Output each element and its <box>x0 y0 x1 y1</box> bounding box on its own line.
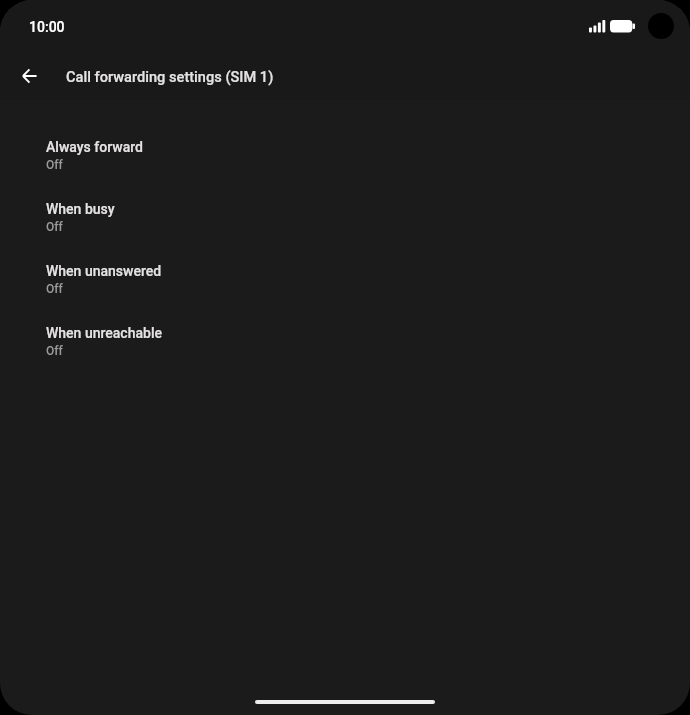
button[interactable]: Always forward <box>0 132 690 194</box>
staticText: Call forwarding settings (SIM 1) <box>66 68 274 85</box>
staticText: Off <box>46 220 63 234</box>
button[interactable]: When unanswered <box>0 256 690 318</box>
staticText: Off <box>46 344 63 358</box>
staticText: When busy <box>46 201 115 217</box>
staticText: When unanswered <box>46 263 162 279</box>
staticText: Off <box>46 158 63 172</box>
staticText: When unreachable <box>46 325 162 341</box>
staticText: 10:00 <box>29 19 65 35</box>
button[interactable]: When unreachable <box>0 318 690 380</box>
button[interactable]: When busy <box>0 194 690 256</box>
button[interactable]: Navigate up <box>5 52 53 100</box>
staticText: Always forward <box>46 139 143 155</box>
staticText: Off <box>46 282 63 296</box>
